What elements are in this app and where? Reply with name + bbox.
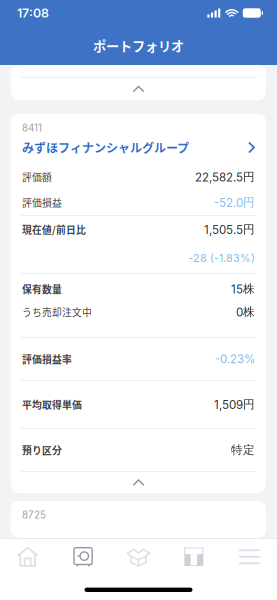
button[interactable]: 商品 xyxy=(111,539,166,575)
staticText: 22,582.5円 xyxy=(195,170,255,184)
staticText: みずほフィナンシャルグループ xyxy=(22,139,189,156)
staticText: 平均取得単価 xyxy=(22,397,82,412)
staticText: 8725 xyxy=(22,509,46,521)
staticText: 評価損益率 xyxy=(22,352,72,366)
staticText: -0.23% xyxy=(215,352,255,366)
button[interactable]: 折りたたむ xyxy=(11,472,266,493)
staticText: -28 (-1.83%) xyxy=(188,251,255,265)
staticText: 0株 xyxy=(236,305,255,319)
button[interactable]: マーケット xyxy=(166,539,222,575)
staticText: 保有数量 xyxy=(22,282,62,296)
staticText: 8411 xyxy=(22,122,42,134)
staticText: 評価損益 xyxy=(22,195,62,210)
staticText: -52.0円 xyxy=(214,195,255,210)
staticText: 1,505.5円 xyxy=(204,222,255,237)
staticText: 15株 xyxy=(231,282,255,296)
button[interactable]: 資産 xyxy=(55,539,111,575)
button[interactable]: メニュー xyxy=(222,539,277,575)
staticText: 預り区分 xyxy=(22,443,62,457)
staticText: 特定 xyxy=(231,443,255,457)
staticText: 17:08 xyxy=(17,5,49,20)
staticText: 1,509円 xyxy=(214,397,255,412)
button[interactable]: 折りたたむ xyxy=(11,78,266,100)
button[interactable]: 8411 xyxy=(11,114,266,164)
staticText: 評価額 xyxy=(22,170,52,184)
button[interactable]: ホーム xyxy=(0,539,55,575)
staticText: うち売却注文中 xyxy=(22,305,92,319)
staticText: ポートフォリオ xyxy=(93,36,184,55)
staticText: 現在値/前日比 xyxy=(22,222,86,237)
